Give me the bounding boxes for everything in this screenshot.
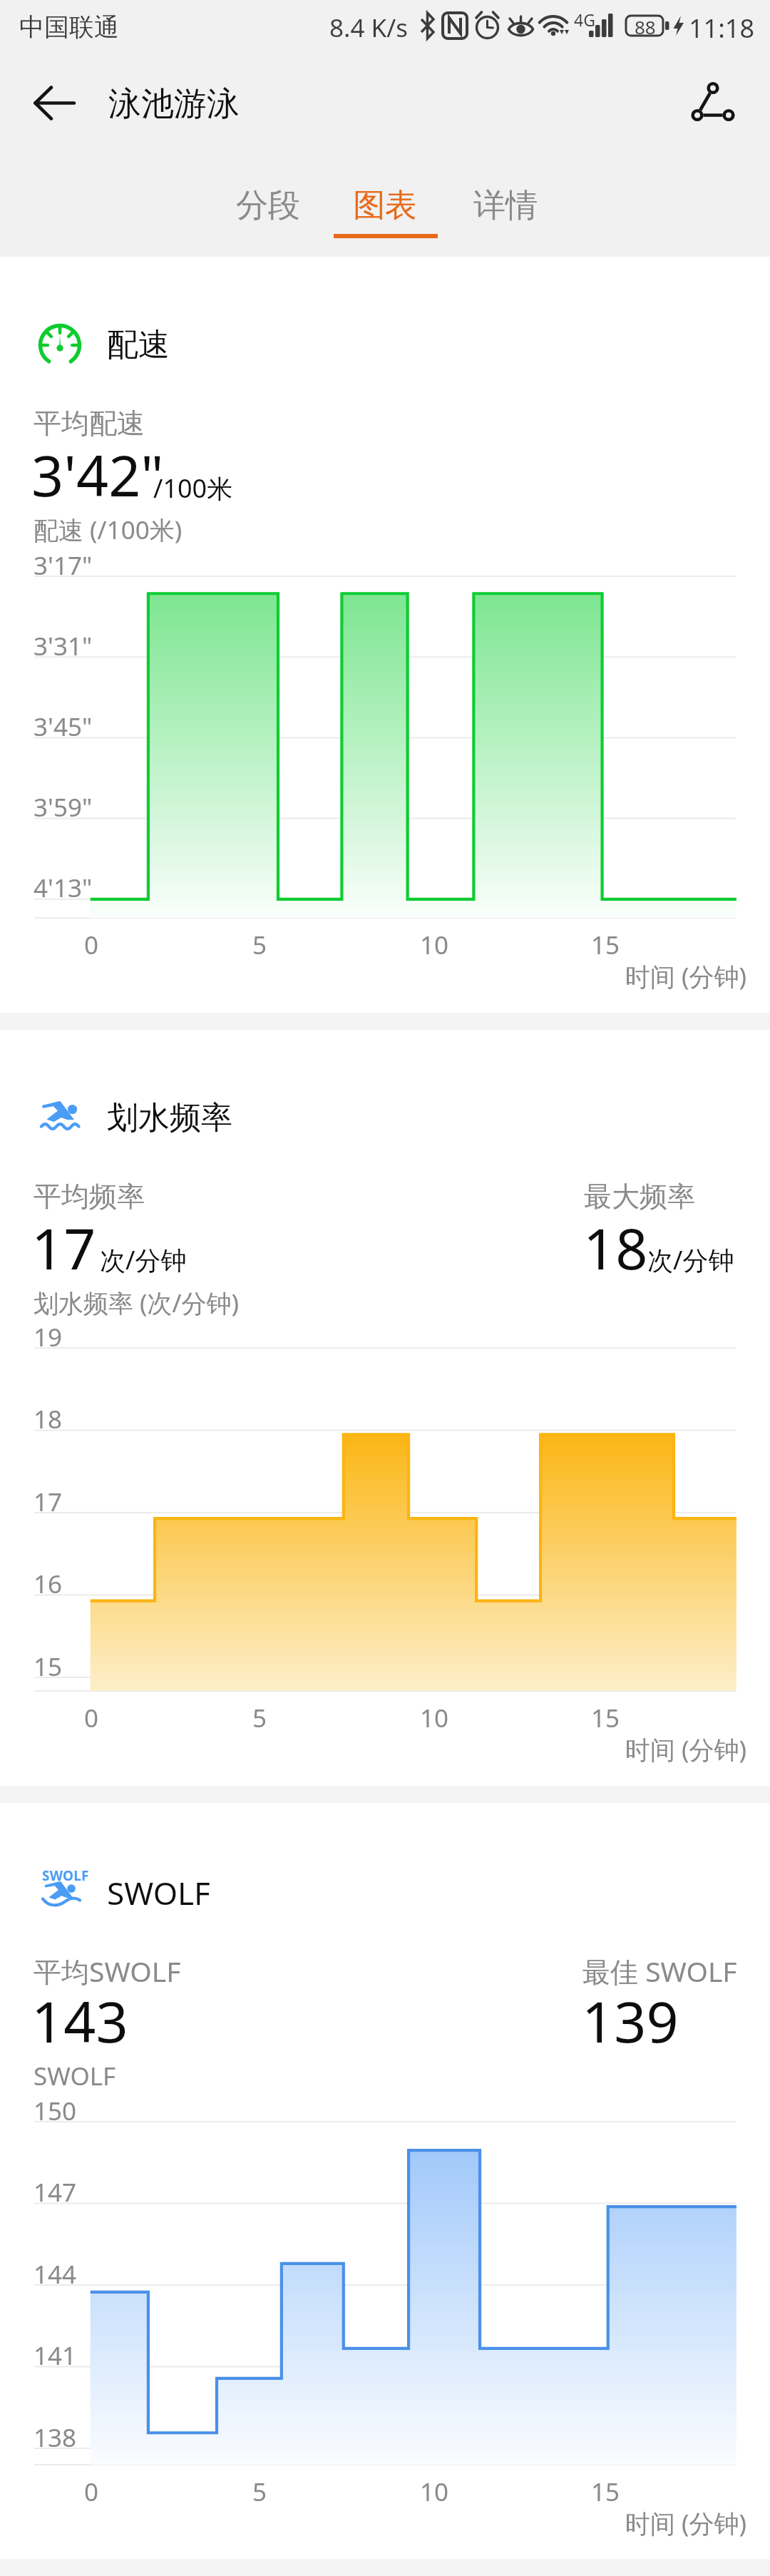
staticText: 3'45": [34, 710, 93, 744]
staticText: 10: [420, 1701, 449, 1735]
staticText: 平均配速: [34, 406, 145, 441]
button[interactable]: 详情: [453, 177, 558, 248]
staticText: 3'31": [34, 629, 93, 663]
staticText: 4G: [574, 9, 595, 31]
staticText: 18: [583, 1210, 648, 1287]
button[interactable]: 图表: [333, 177, 438, 248]
staticText: 141: [34, 2339, 77, 2373]
staticText: 143: [31, 1983, 128, 2060]
staticText: 分段: [236, 185, 300, 226]
staticText: 平均频率: [34, 1179, 145, 1214]
staticText: 3'59": [34, 790, 93, 824]
staticText: SWOLF: [107, 1871, 210, 1914]
staticText: 配速 (/100米): [34, 513, 183, 547]
staticText: 划水频率 (次/分钟): [34, 1286, 240, 1320]
staticText: 138: [34, 2421, 77, 2455]
staticText: 150: [34, 2094, 77, 2128]
staticText: /100米: [153, 471, 233, 506]
staticText: 0: [84, 1701, 99, 1735]
staticText: 144: [34, 2257, 77, 2291]
staticText: 中国联通: [19, 11, 119, 43]
staticText: 15: [591, 1701, 620, 1735]
staticText: SWOLF: [34, 2059, 116, 2093]
button[interactable]: Back: [20, 68, 88, 137]
staticText: SWOLF: [42, 1866, 89, 1885]
staticText: 最佳 SWOLF: [582, 1952, 737, 1990]
staticText: 11:18: [689, 11, 755, 46]
staticText: 时间 (分钟): [625, 959, 747, 993]
staticText: 3'17": [34, 548, 93, 583]
staticText: 配速: [107, 325, 170, 364]
staticText: 15: [34, 1650, 63, 1684]
staticText: 0: [84, 928, 99, 962]
staticText: 19: [34, 1320, 63, 1354]
staticText: 15: [591, 2475, 620, 2509]
button[interactable]: Share: [674, 64, 750, 140]
staticText: 最大频率: [584, 1179, 695, 1214]
staticText: 图表: [353, 185, 417, 226]
staticText: 详情: [473, 185, 538, 226]
staticText: 17: [34, 1485, 63, 1519]
staticText: 时间 (分钟): [625, 2506, 747, 2540]
staticText: 0: [84, 2475, 99, 2509]
staticText: 时间 (分钟): [625, 1732, 747, 1767]
staticText: 8.4 K/s: [329, 11, 408, 45]
staticText: 4'13": [34, 871, 93, 905]
staticText: 3'42": [31, 436, 164, 513]
staticText: 划水频率: [107, 1098, 232, 1138]
staticText: 次/分钟: [100, 1242, 187, 1277]
staticText: 18: [34, 1402, 63, 1436]
staticText: 88: [635, 14, 656, 39]
staticText: 17: [31, 1210, 96, 1287]
staticText: 10: [420, 2475, 449, 2509]
staticText: 5: [252, 2475, 267, 2509]
staticText: 10: [420, 928, 449, 962]
staticText: 147: [34, 2175, 77, 2209]
staticText: 5: [252, 1701, 267, 1735]
staticText: 泳池游泳: [108, 83, 240, 125]
staticText: 次/分钟: [647, 1242, 734, 1277]
staticText: 5: [252, 928, 267, 962]
staticText: 15: [591, 928, 620, 962]
staticText: 139: [582, 1983, 679, 2060]
staticText: 16: [34, 1567, 63, 1601]
staticText: 平均SWOLF: [34, 1952, 181, 1990]
button[interactable]: 分段: [216, 177, 321, 248]
